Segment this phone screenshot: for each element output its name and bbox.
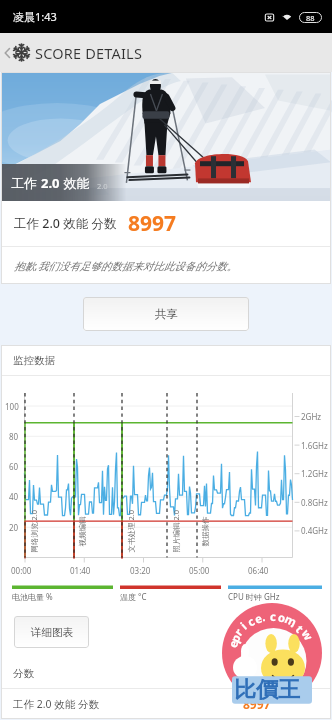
staticText: 凌晨1:43: [13, 9, 57, 24]
staticText: m: [282, 611, 300, 631]
staticText: 抱歉,我们没有足够的数据来对比此设备的分数。: [14, 259, 238, 273]
staticText: r: [231, 625, 247, 639]
staticText: e: [253, 610, 264, 628]
staticText: 01:40: [70, 565, 91, 576]
staticText: 0.8GHz: [301, 497, 328, 508]
staticText: 分数: [13, 667, 34, 680]
staticText: 工作 2.0 效能 分数: [14, 215, 117, 232]
staticText: 40: [9, 491, 19, 502]
staticText: 8997: [128, 209, 177, 238]
staticText: 88: [306, 13, 315, 23]
staticText: 60: [9, 461, 19, 472]
staticText: 06:40: [248, 565, 269, 576]
staticText: 详细图表: [31, 626, 73, 639]
staticText: w: [298, 626, 316, 643]
staticText: 电池电量 %: [12, 591, 53, 602]
staticText: .: [288, 616, 300, 632]
staticText: c: [270, 609, 276, 625]
staticText: 照片编辑 2.0: [170, 509, 180, 552]
staticText: SCORE DETAILS: [35, 43, 143, 63]
staticText: o: [276, 609, 288, 627]
staticText: e: [225, 638, 242, 649]
button[interactable]: 共享: [83, 297, 249, 331]
button[interactable]: 详细图表: [14, 616, 89, 648]
staticText: 2.0: [97, 181, 108, 191]
staticText: 00:00: [11, 565, 32, 576]
staticText: 网络浏览 2.0: [28, 509, 38, 552]
staticText: 05:00: [189, 565, 210, 576]
staticText: 数据操作: [200, 516, 209, 546]
staticText: 比價王: [234, 676, 300, 704]
staticText: CPU 时钟 GHz: [228, 591, 280, 602]
staticText: 03:20: [130, 565, 151, 576]
staticText: 效能: [60, 174, 90, 192]
staticText: t: [292, 622, 307, 636]
staticText: 8997: [243, 696, 271, 712]
staticText: 2.0: [41, 174, 60, 192]
button[interactable]: Back: [0, 33, 13, 72]
staticText: 监控数据: [13, 354, 55, 367]
staticText: p: [227, 631, 245, 645]
staticText: 文书处理 2.0: [125, 509, 135, 552]
staticText: 温度 °C: [120, 591, 147, 602]
staticText: 2GHz: [301, 411, 322, 422]
staticText: 100: [5, 401, 19, 412]
staticText: 0.4GHz: [301, 525, 328, 536]
staticText: 视频编辑: [77, 516, 86, 546]
staticText: 1.2GHz: [301, 468, 328, 479]
staticText: 1.6GHz: [301, 440, 328, 451]
staticText: 80: [9, 431, 19, 442]
staticText: 共享: [155, 307, 178, 321]
staticText: .: [261, 609, 267, 625]
staticText: 20: [9, 522, 19, 533]
staticText: i: [237, 619, 251, 633]
staticText: 工作 2.0 效能 分数: [13, 697, 100, 711]
staticText: c: [244, 614, 258, 630]
staticText: 工作: [11, 174, 41, 192]
